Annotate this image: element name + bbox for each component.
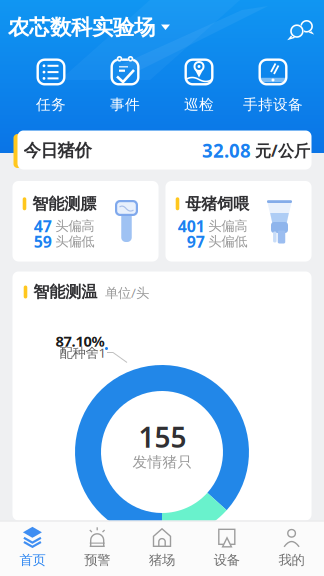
staticText: 头偏低 (55, 233, 94, 250)
button[interactable]: 我的 (279, 526, 305, 568)
button[interactable]: 任务 (36, 56, 66, 113)
button[interactable]: 事件 (110, 56, 140, 113)
button[interactable]: 设备 (214, 526, 240, 568)
staticText: 头偏高 (55, 218, 94, 234)
staticText: 元/公斤 (255, 140, 310, 161)
staticText: 农芯数科实验场 (8, 14, 155, 41)
staticText: 任务 (36, 95, 66, 113)
staticText: 猪场 (149, 552, 175, 568)
staticText: 手持设备 (243, 95, 303, 113)
staticText: 头偏低 (208, 233, 247, 250)
staticText: 配种舍1 (59, 344, 106, 361)
button[interactable]: 巡检 (184, 56, 214, 113)
staticText: 首页 (19, 552, 45, 568)
button[interactable]: 首页 (19, 526, 45, 568)
button[interactable]: 智能测膘 (12, 181, 158, 261)
staticText: 47 (34, 215, 52, 237)
staticText: 我的 (279, 552, 305, 568)
staticText: 母猪饲喂 (185, 194, 249, 214)
staticText: 401 (178, 215, 205, 237)
staticText: 87.10% (55, 331, 104, 351)
button[interactable]: 手持设备 (243, 56, 303, 113)
button[interactable]: 农芯数科实验场 (8, 14, 170, 41)
staticText: 今日猪价 (23, 140, 91, 161)
button[interactable]: 消息 (288, 19, 315, 40)
button[interactable]: 今日猪价 (13, 130, 311, 169)
staticText: 59 (34, 231, 52, 252)
staticText: 单位/头 (105, 284, 149, 301)
staticText: 32.08 (202, 138, 251, 163)
button[interactable]: 猪场 (149, 526, 175, 568)
button[interactable]: 预警 (84, 526, 110, 568)
staticText: 智能测温 (33, 282, 97, 302)
staticText: 智能测膘 (32, 194, 96, 214)
staticText: 头偏高 (208, 218, 247, 234)
staticText: 155 (138, 418, 186, 456)
staticText: 设备 (214, 552, 240, 568)
staticText: 巡检 (184, 95, 214, 113)
staticText: 发情猪只 (132, 453, 192, 471)
staticText: 97 (187, 231, 205, 252)
button[interactable]: 母猪饲喂 (165, 181, 311, 261)
staticText: 预警 (84, 552, 110, 568)
staticText: 事件 (110, 95, 140, 113)
